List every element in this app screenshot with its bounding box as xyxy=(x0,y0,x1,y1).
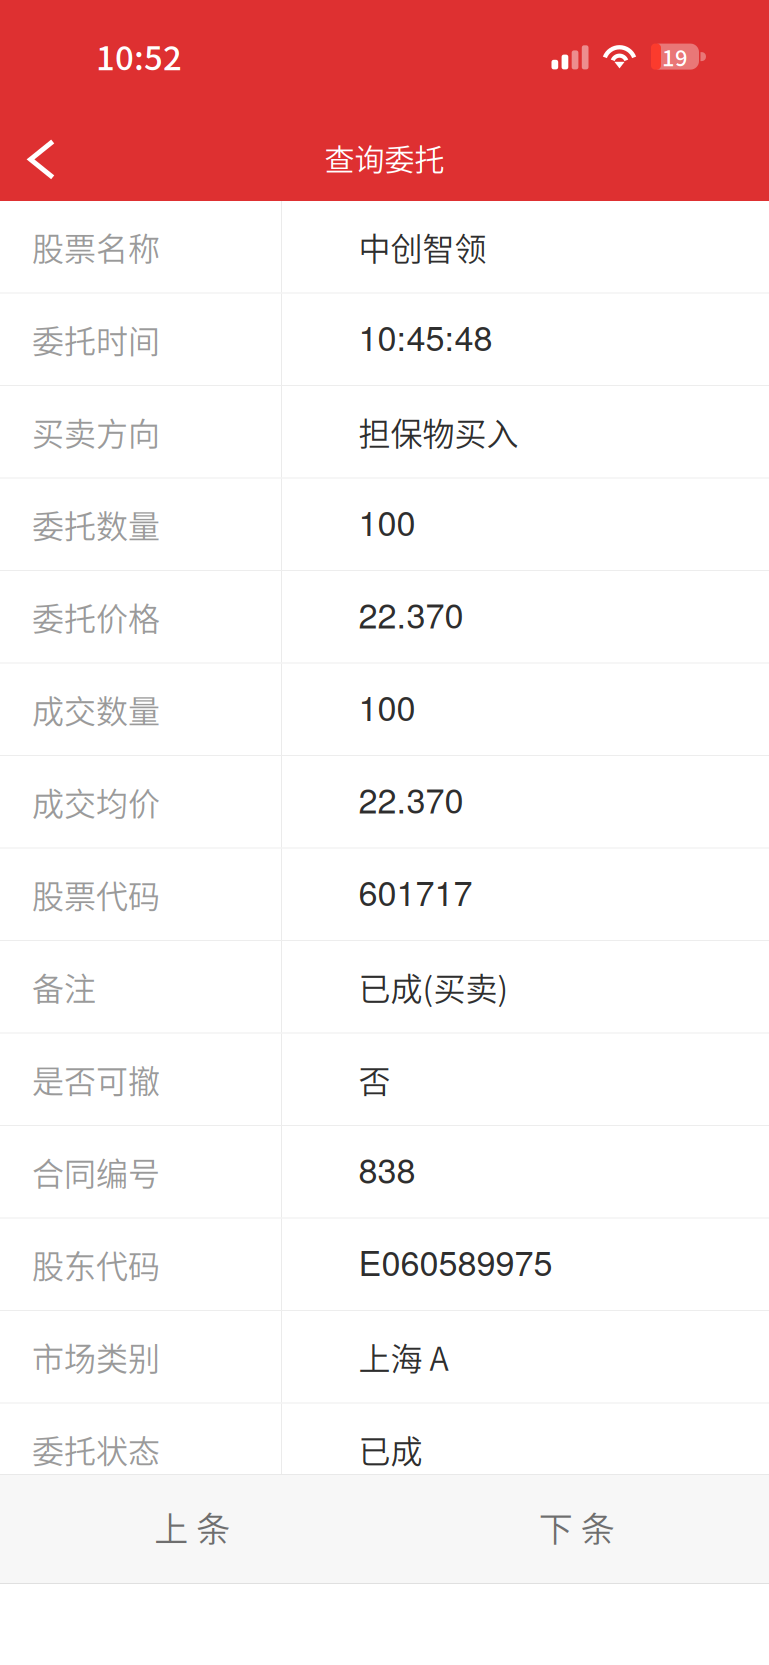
staticText: 查询委托 xyxy=(324,136,444,179)
staticText: 市场类别 xyxy=(32,1334,160,1380)
button[interactable]: 下 条 xyxy=(384,1475,769,1583)
staticText: E060589975 xyxy=(358,1237,552,1286)
staticText: 委托价格 xyxy=(32,594,160,640)
staticText: 成交数量 xyxy=(32,686,160,732)
staticText: 委托时间 xyxy=(32,316,160,362)
staticText: 下 条 xyxy=(539,1502,615,1552)
button[interactable]: 上 条 xyxy=(0,1475,384,1583)
staticText: 838 xyxy=(358,1144,415,1193)
staticText: 已成 xyxy=(358,1426,422,1472)
staticText: 中创智领 xyxy=(358,224,486,270)
staticText: 22.370 xyxy=(358,589,463,638)
staticText: 备注 xyxy=(32,964,96,1010)
button[interactable]: 返回 xyxy=(0,114,92,201)
staticText: 委托状态 xyxy=(32,1426,160,1472)
staticText: 上海 A xyxy=(358,1334,448,1380)
staticText: 买卖方向 xyxy=(32,409,160,455)
staticText: 股票代码 xyxy=(32,871,160,917)
staticText: 100 xyxy=(358,682,415,731)
staticText: 已成(买卖) xyxy=(358,964,508,1010)
staticText: 否 xyxy=(358,1056,390,1102)
staticText: 委托数量 xyxy=(32,501,160,547)
staticText: 股东代码 xyxy=(32,1241,160,1287)
staticText: 上 条 xyxy=(154,1502,230,1552)
staticText: 22.370 xyxy=(358,774,463,823)
staticText: 担保物买入 xyxy=(358,409,518,455)
staticText: 成交均价 xyxy=(32,779,160,825)
staticText: 合同编号 xyxy=(32,1149,160,1195)
staticText: 10:45:48 xyxy=(358,312,492,361)
staticText: 10:52 xyxy=(96,32,182,80)
staticText: 股票名称 xyxy=(32,224,160,270)
staticText: 19 xyxy=(662,41,688,73)
staticText: 601717 xyxy=(358,867,472,916)
staticText: 是否可撤 xyxy=(32,1056,160,1102)
staticText: 100 xyxy=(358,497,415,546)
